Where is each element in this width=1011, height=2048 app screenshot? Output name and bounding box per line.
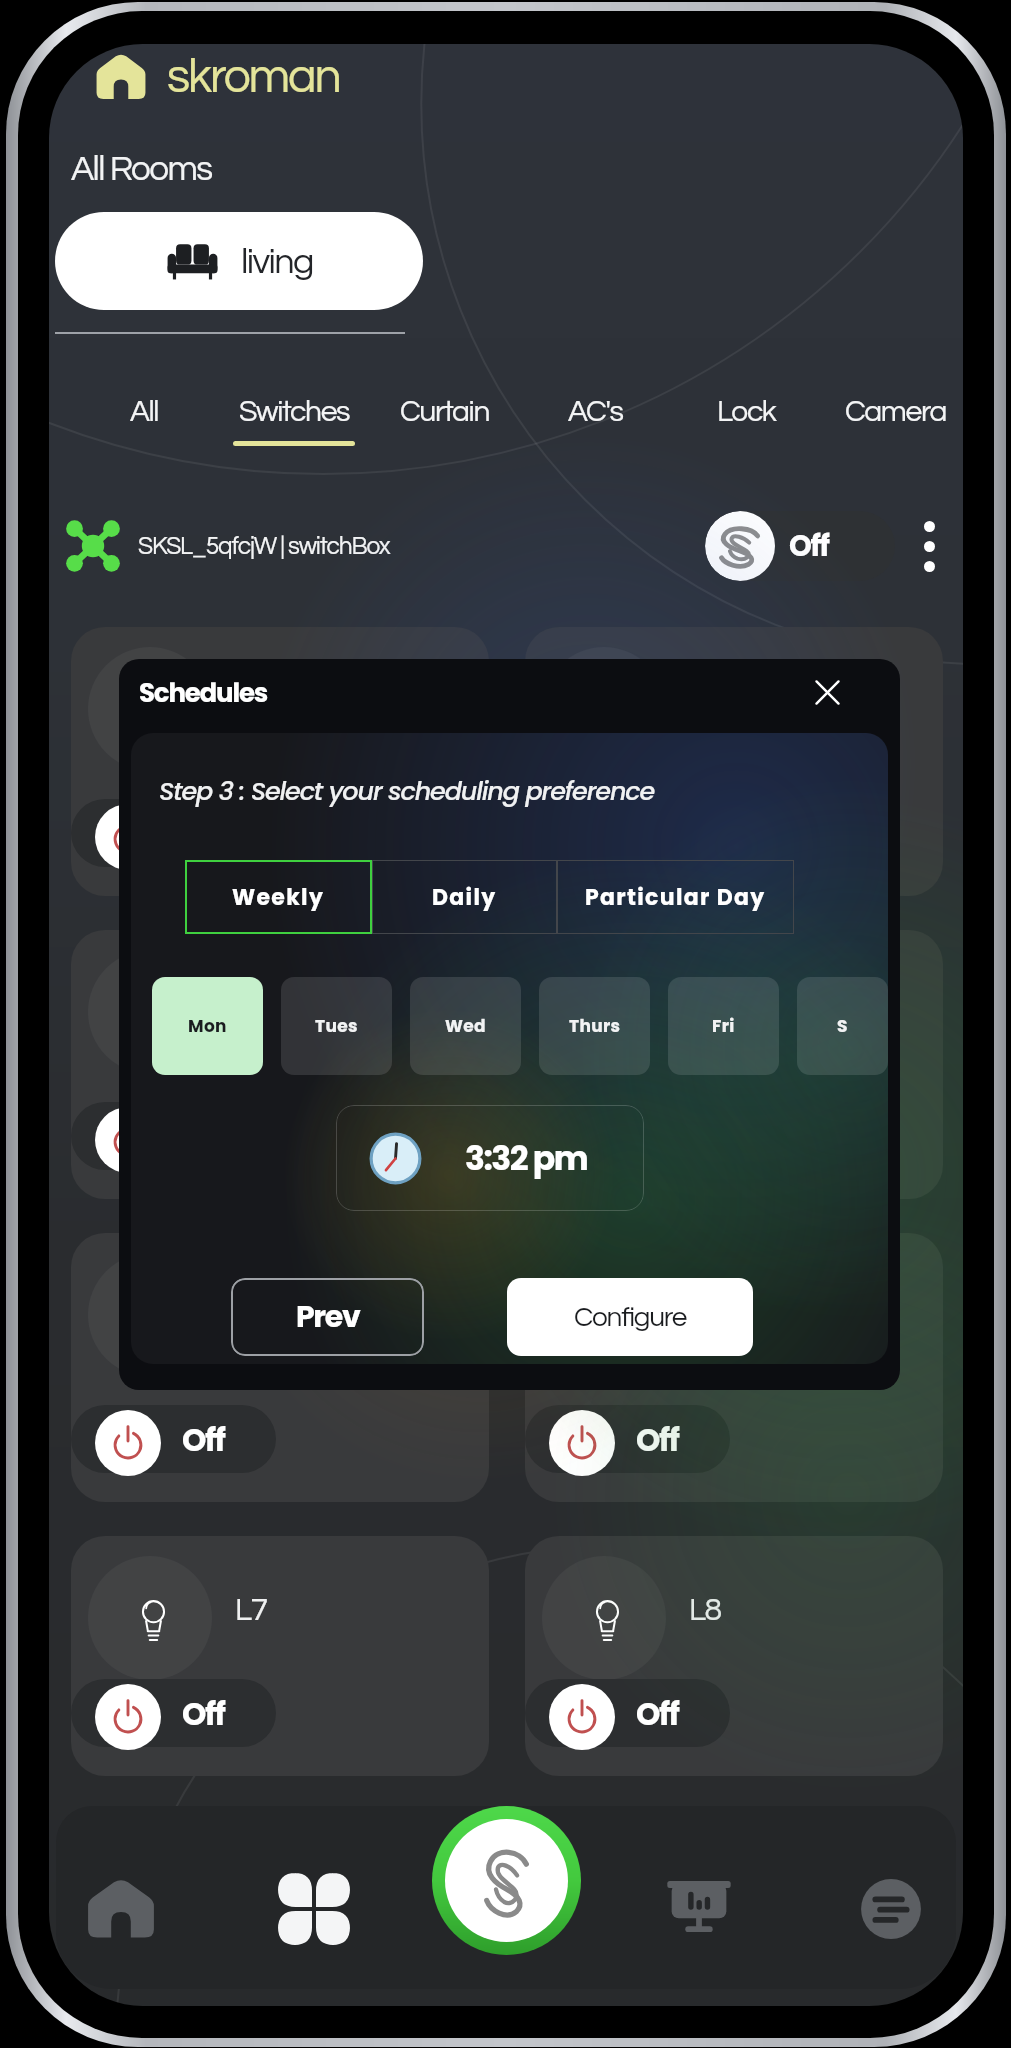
staticText: L8 — [689, 1594, 721, 1627]
button[interactable]: More options — [909, 506, 949, 586]
staticText: L4 — [689, 988, 721, 1021]
button[interactable]: Off — [705, 511, 895, 581]
button[interactable]: Off — [525, 1405, 730, 1473]
button[interactable]: L4 — [525, 930, 943, 1199]
button[interactable]: Off — [71, 1102, 276, 1170]
staticText: Off — [789, 526, 829, 567]
button[interactable]: Off — [525, 1679, 730, 1747]
button[interactable]: Off — [71, 1679, 276, 1747]
button[interactable]: Curtain — [384, 396, 506, 446]
button[interactable]: Skroman assistant — [432, 1806, 581, 1955]
button[interactable]: Camera — [835, 396, 957, 446]
button[interactable]: L8 — [525, 1536, 943, 1776]
staticText: Switches — [239, 396, 350, 427]
staticText: S — [837, 1014, 848, 1038]
staticText: Weekly — [232, 882, 325, 913]
button[interactable]: Fri — [668, 977, 779, 1075]
staticText: Schedules — [139, 675, 268, 711]
staticText: Off — [636, 1418, 679, 1461]
button[interactable]: Statistics — [645, 1855, 753, 1963]
button[interactable]: 3:32 pm — [336, 1105, 644, 1211]
staticText: Off — [182, 1418, 225, 1461]
button[interactable]: Wed — [410, 977, 521, 1075]
staticText: Curtain — [400, 396, 490, 427]
staticText: Off — [636, 1115, 679, 1158]
staticText: Step 3 : Select your scheduling preferen… — [159, 773, 655, 809]
button[interactable]: Devices — [260, 1855, 368, 1963]
button[interactable]: L3 — [71, 930, 489, 1199]
staticText: Thurs — [569, 1014, 621, 1038]
staticText: Tues — [315, 1014, 358, 1038]
button[interactable]: L5 — [71, 1233, 489, 1502]
staticText: Daily — [432, 882, 497, 913]
button[interactable]: living — [55, 212, 423, 310]
staticText: L7 — [235, 1594, 267, 1627]
staticText: L1 — [235, 685, 267, 718]
staticText: Lock — [717, 396, 776, 427]
staticText: All Rooms — [71, 151, 212, 187]
button[interactable]: Prev — [231, 1278, 424, 1356]
staticText: Off — [182, 1692, 225, 1735]
staticText: L3 — [235, 988, 267, 1021]
button[interactable]: Off — [71, 799, 276, 867]
button[interactable]: Off — [71, 1405, 276, 1473]
staticText: Off — [636, 1692, 679, 1735]
button[interactable]: L6 — [525, 1233, 943, 1502]
staticText: Fri — [712, 1014, 735, 1038]
staticText: All — [130, 396, 159, 427]
button[interactable]: Weekly — [185, 860, 372, 934]
staticText: Wed — [445, 1014, 486, 1038]
button[interactable]: Tues — [281, 977, 392, 1075]
button[interactable]: Menu — [837, 1855, 945, 1963]
button[interactable]: Mon — [152, 977, 263, 1075]
button[interactable]: L7 — [71, 1536, 489, 1776]
button[interactable]: AC's — [534, 396, 656, 446]
button[interactable]: Particular Day — [557, 860, 794, 934]
staticText: Configure — [574, 1303, 687, 1332]
button[interactable]: L2 — [525, 627, 943, 896]
staticText: Mon — [188, 1014, 227, 1038]
button[interactable]: Close — [804, 669, 850, 715]
button[interactable]: Thurs — [539, 977, 650, 1075]
staticText: AC's — [568, 396, 623, 427]
staticText: SKSL_5qfcjW | switchBox — [138, 534, 390, 559]
button[interactable]: Home — [67, 1855, 175, 1963]
staticText: 3:32 pm — [465, 1135, 588, 1181]
button[interactable]: All — [83, 396, 205, 446]
button[interactable]: Off — [525, 799, 730, 867]
staticText: living — [241, 243, 313, 280]
button[interactable]: L1 — [71, 627, 489, 896]
staticText: Camera — [845, 396, 947, 427]
button[interactable]: Lock — [685, 396, 807, 446]
staticText: Prev — [296, 1296, 360, 1338]
button[interactable]: Switches — [233, 396, 355, 446]
staticText: Particular Day — [585, 882, 766, 913]
button[interactable]: Daily — [372, 860, 557, 934]
button[interactable]: Configure — [507, 1278, 753, 1356]
button[interactable]: Off — [525, 1102, 730, 1170]
button[interactable]: S — [797, 977, 888, 1075]
staticText: skroman — [167, 53, 340, 102]
